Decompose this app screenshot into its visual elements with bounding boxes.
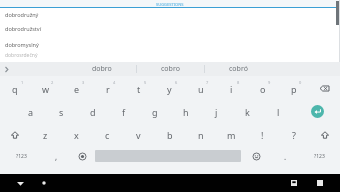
button[interactable]: dobro <box>68 62 136 76</box>
button[interactable]: cobró <box>205 62 272 76</box>
staticText: l <box>277 106 280 118</box>
staticText: ? <box>292 129 296 141</box>
staticText: ?123 <box>314 153 325 160</box>
staticText: u <box>198 83 204 95</box>
staticText: dobrosrdečný <box>5 52 38 59</box>
staticText: r <box>106 83 110 95</box>
staticText: 3 <box>82 80 85 85</box>
button[interactable]: ?123 <box>0 146 43 166</box>
staticText: d <box>90 106 96 118</box>
button[interactable]: e <box>61 77 92 100</box>
staticText: o <box>260 83 266 95</box>
staticText: s <box>59 106 64 118</box>
button[interactable]: g <box>139 100 170 123</box>
button[interactable]: s <box>46 100 77 123</box>
staticText: z <box>43 129 48 141</box>
button[interactable]: Home <box>36 175 52 191</box>
button[interactable]: ?123 <box>298 146 340 166</box>
staticText: dobrodružství <box>5 25 42 32</box>
staticText: h <box>183 106 189 118</box>
button[interactable]: j <box>201 100 232 123</box>
button[interactable]: k <box>232 100 263 123</box>
button[interactable]: n <box>185 123 216 146</box>
staticText: 8 <box>237 80 240 85</box>
staticText: w <box>42 83 50 95</box>
staticText: a <box>28 106 34 118</box>
staticText: 5 <box>144 80 147 85</box>
staticText: dobromyslný <box>5 41 39 48</box>
staticText: dobro <box>92 64 112 74</box>
button[interactable]: m <box>216 123 247 146</box>
staticText: 2 <box>51 80 54 85</box>
button[interactable]: d <box>77 100 108 123</box>
button[interactable]: o <box>247 77 278 100</box>
staticText: j <box>215 106 218 118</box>
button[interactable]: l <box>263 100 294 123</box>
staticText: 7 <box>206 80 209 85</box>
button[interactable]: i <box>216 77 247 100</box>
staticText: m <box>227 129 236 141</box>
button[interactable]: dobrodružství <box>0 20 340 36</box>
staticText: 4 <box>113 80 116 85</box>
button[interactable]: f <box>108 100 139 123</box>
button[interactable]: ? <box>278 123 309 146</box>
staticText: ! <box>261 129 264 141</box>
staticText: SUGGESTIONS <box>156 2 184 7</box>
staticText: e <box>74 83 80 95</box>
staticText: . <box>284 151 287 162</box>
staticText: dobrodružný <box>5 11 39 18</box>
button[interactable]: v <box>123 123 154 146</box>
staticText: t <box>137 83 141 95</box>
staticText: y <box>167 83 172 95</box>
button[interactable]: Emoji <box>241 146 272 166</box>
staticText: i <box>230 83 233 95</box>
button[interactable]: Recent apps <box>312 175 328 191</box>
button[interactable]: w <box>30 77 61 100</box>
staticText: cobro <box>161 64 180 74</box>
button[interactable]: t <box>123 77 154 100</box>
button[interactable]: b <box>154 123 185 146</box>
button[interactable]: Back <box>12 175 28 191</box>
staticText: , <box>55 151 58 162</box>
staticText: ?123 <box>16 153 27 160</box>
staticText: 9 <box>268 80 271 85</box>
button[interactable]: y <box>154 77 185 100</box>
button[interactable]: c <box>92 123 123 146</box>
button[interactable]: dobrosrdečný <box>0 52 340 62</box>
staticText: b <box>167 129 173 141</box>
staticText: p <box>291 83 297 95</box>
button[interactable]: Switch keyboard <box>286 175 302 191</box>
button[interactable]: u <box>185 77 216 100</box>
button[interactable]: r <box>92 77 123 100</box>
staticText: cobró <box>229 64 248 74</box>
button[interactable]: Change keyboard language <box>69 146 95 166</box>
button[interactable]: Expand suggestions <box>0 63 12 75</box>
button[interactable]: ! <box>247 123 278 146</box>
button[interactable]: dobromyslný <box>0 36 340 52</box>
staticText: f <box>122 106 126 118</box>
button[interactable]: Shift <box>309 123 340 146</box>
staticText: q <box>12 83 18 95</box>
button[interactable]: dobrodružný <box>0 8 340 20</box>
button[interactable]: Backspace <box>309 77 340 100</box>
button[interactable]: p <box>278 77 309 100</box>
button[interactable]: . <box>272 146 298 166</box>
button[interactable]: Enter <box>294 100 340 123</box>
button[interactable]: a <box>15 100 46 123</box>
staticText: v <box>136 129 141 141</box>
button[interactable]: cobro <box>137 62 204 76</box>
button[interactable]: x <box>61 123 92 146</box>
button[interactable]: q <box>0 77 30 100</box>
button[interactable]: h <box>170 100 201 123</box>
staticText: n <box>198 129 204 141</box>
staticText: k <box>245 106 250 118</box>
staticText: c <box>105 129 110 141</box>
staticText: x <box>74 129 79 141</box>
staticText: 0 <box>299 80 302 85</box>
button[interactable]: Shift <box>0 123 30 146</box>
button[interactable]: z <box>30 123 61 146</box>
staticText: 6 <box>175 80 178 85</box>
staticText: 1 <box>21 80 24 85</box>
button[interactable]: , <box>43 146 69 166</box>
